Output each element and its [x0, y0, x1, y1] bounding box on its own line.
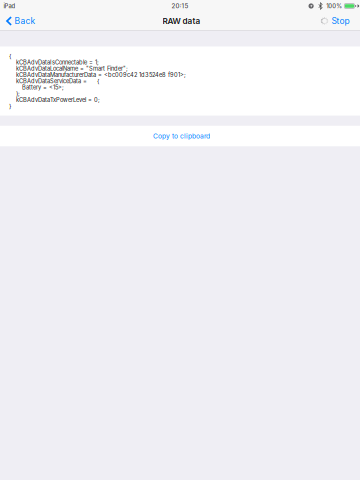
staticText: kCBAdvDataLocalName = "Smart Finder"; — [16, 65, 128, 72]
staticText: 20:15 — [171, 2, 188, 10]
staticText: } — [9, 103, 11, 109]
staticText: Battery = <15>; — [22, 84, 64, 91]
staticText: kCBAdvDataIsConnectable = 1; — [16, 59, 99, 66]
staticText: kCBAdvDataManufacturerData = <bc009c42 1… — [16, 71, 186, 78]
button[interactable]: Stop — [315, 12, 360, 30]
staticText: RAW data — [162, 16, 200, 26]
button[interactable]: Back — [0, 12, 42, 30]
staticText: Copy to clipboard — [153, 132, 210, 140]
staticText: Back — [15, 16, 36, 26]
staticText: }; — [16, 90, 20, 97]
staticText: 100% — [326, 2, 342, 10]
staticText: kCBAdvDataTxPowerLevel = 0; — [16, 96, 100, 103]
staticText: iPad — [3, 2, 15, 10]
button[interactable]: Copy to clipboard — [0, 126, 360, 146]
staticText: { — [9, 53, 11, 60]
staticText: Stop — [331, 16, 349, 26]
staticText: kCBAdvDataServiceData = { — [16, 78, 99, 85]
